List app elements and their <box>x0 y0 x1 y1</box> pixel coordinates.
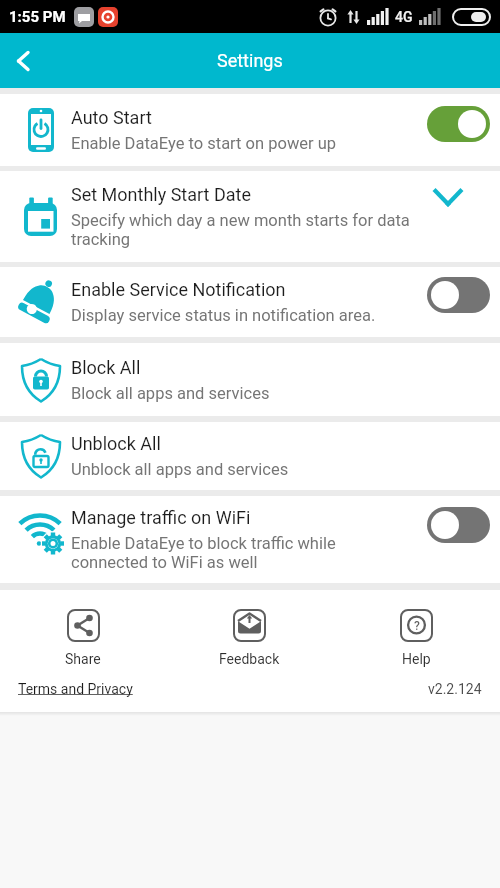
staticText: Enable DataEye to start on power up <box>71 134 337 153</box>
staticText: connected to WiFi as well <box>71 553 258 572</box>
button[interactable]: Manage traffic on WiFi <box>0 496 500 583</box>
staticText: v2.2.124 <box>428 681 482 697</box>
button[interactable] <box>6 43 42 79</box>
button[interactable]: Auto Start <box>0 94 500 166</box>
staticText: Block All <box>71 357 141 378</box>
staticText: Share <box>65 651 101 667</box>
staticText: Display service status in notification a… <box>71 306 376 325</box>
button[interactable]: Feedback <box>166 609 333 667</box>
button[interactable] <box>427 106 490 142</box>
button[interactable] <box>427 507 490 543</box>
staticText: 1:55 PM <box>9 8 66 26</box>
staticText: Unblock All <box>71 433 161 454</box>
staticText: Specify which day a new month starts for… <box>71 211 410 230</box>
button[interactable] <box>428 178 468 218</box>
button[interactable]: Unblock All <box>0 422 500 490</box>
staticText: Feedback <box>219 651 280 667</box>
button[interactable]: ? <box>333 609 500 667</box>
button[interactable] <box>427 277 490 313</box>
staticText: tracking <box>71 230 131 249</box>
staticText: ? <box>414 619 420 633</box>
staticText: Enable DataEye to block traffic while <box>71 534 336 553</box>
button[interactable]: Set Monthly Start Date <box>0 171 500 262</box>
staticText: Set Monthly Start Date <box>71 184 251 205</box>
staticText: Enable Service Notification <box>71 279 286 300</box>
button[interactable]: Enable Service Notification <box>0 267 500 337</box>
button[interactable]: Share <box>0 609 166 667</box>
staticText: Block all apps and services <box>71 384 270 403</box>
button[interactable]: Terms and Privacy <box>18 681 133 697</box>
staticText: Manage traffic on WiFi <box>71 507 251 528</box>
staticText: 4G <box>395 9 413 25</box>
staticText: Help <box>402 651 431 667</box>
staticText: Settings <box>217 50 283 71</box>
button[interactable]: Block All <box>0 343 500 416</box>
staticText: Auto Start <box>71 107 152 128</box>
staticText: Unblock all apps and services <box>71 460 289 479</box>
